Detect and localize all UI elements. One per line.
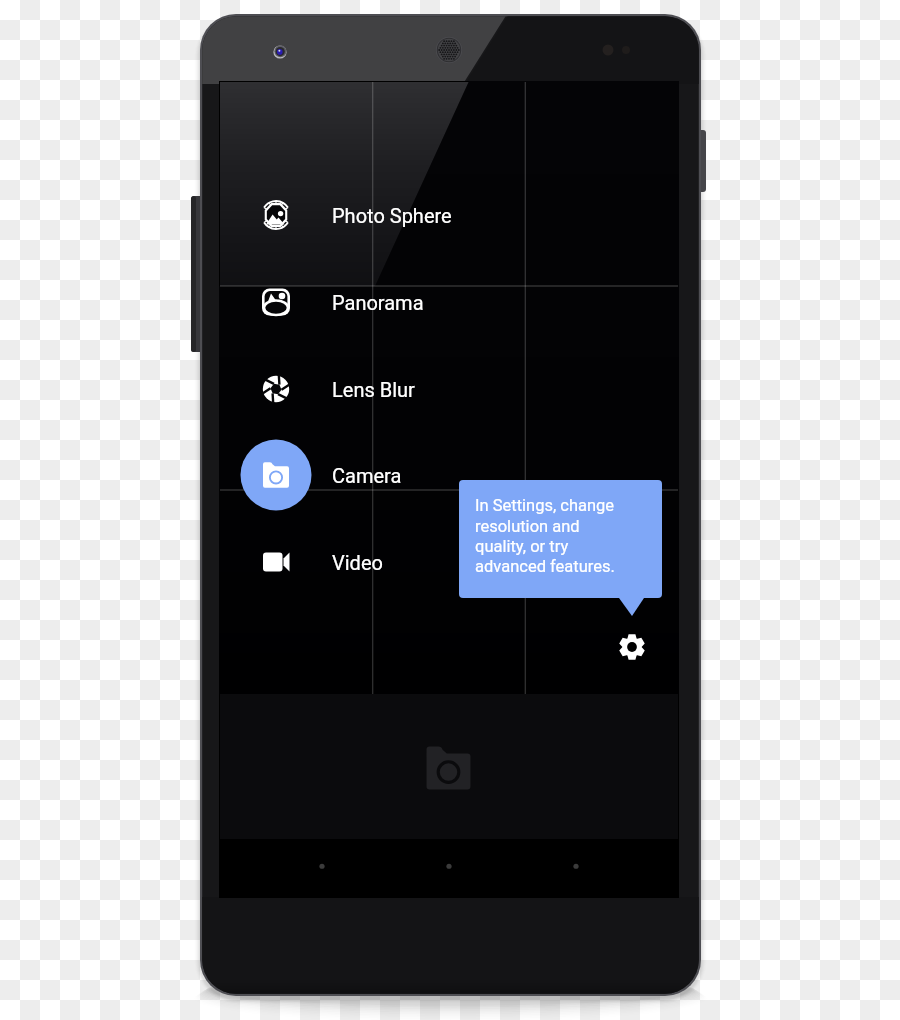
button[interactable]: Camera: [220, 435, 520, 515]
button[interactable]: Photo Sphere: [220, 185, 520, 245]
staticText: Photo Sphere: [332, 204, 452, 227]
staticText: Camera: [332, 464, 402, 487]
button[interactable]: Video: [220, 532, 520, 592]
staticText: Lens Blur: [332, 378, 415, 401]
button[interactable]: In Settings, change resolution and quali…: [459, 480, 662, 598]
staticText: Panorama: [332, 291, 424, 314]
button[interactable]: Lens Blur: [220, 359, 520, 419]
button[interactable]: Panorama: [220, 272, 520, 332]
staticText: Video: [332, 551, 383, 574]
staticText: In Settings, change resolution and quali…: [475, 496, 615, 576]
button[interactable]: Settings: [606, 621, 658, 673]
